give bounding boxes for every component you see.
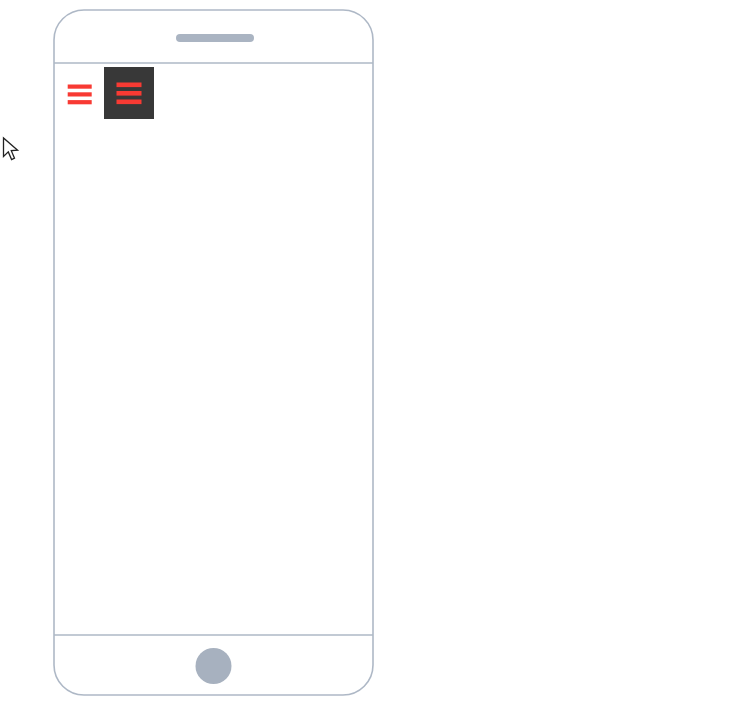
- button[interactable]: Menu: [63, 68, 95, 118]
- button[interactable]: Menu: [104, 67, 154, 119]
